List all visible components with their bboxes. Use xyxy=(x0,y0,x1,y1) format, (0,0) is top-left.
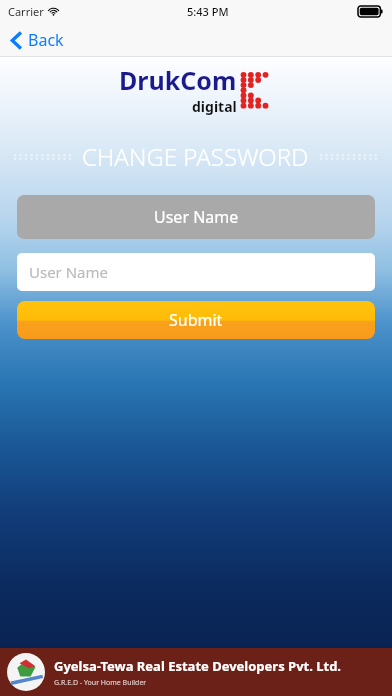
button[interactable]: User Name xyxy=(17,195,375,239)
staticText: Back xyxy=(28,29,64,51)
button[interactable]: Back xyxy=(6,24,69,56)
button[interactable]: Submit xyxy=(17,301,375,339)
staticText: User Name xyxy=(154,206,239,228)
staticText: Gyelsa-Tewa Real Estate Developers Pvt. … xyxy=(54,657,342,675)
button[interactable]: User Name xyxy=(17,253,375,291)
staticText: digital xyxy=(192,97,237,116)
staticText: 5:43 PM xyxy=(187,4,229,19)
other: G.R.E.D logo xyxy=(7,653,45,691)
staticText: Carrier xyxy=(8,4,44,19)
staticText: Submit xyxy=(169,309,223,331)
staticText: DrukCom xyxy=(119,63,237,97)
staticText: CHANGE PASSWORD xyxy=(82,140,309,173)
button[interactable]: G.R.E.D logo xyxy=(0,648,392,696)
staticText: G.R.E.D - Your Home Builder xyxy=(54,678,147,688)
staticText: User Name xyxy=(29,262,109,282)
